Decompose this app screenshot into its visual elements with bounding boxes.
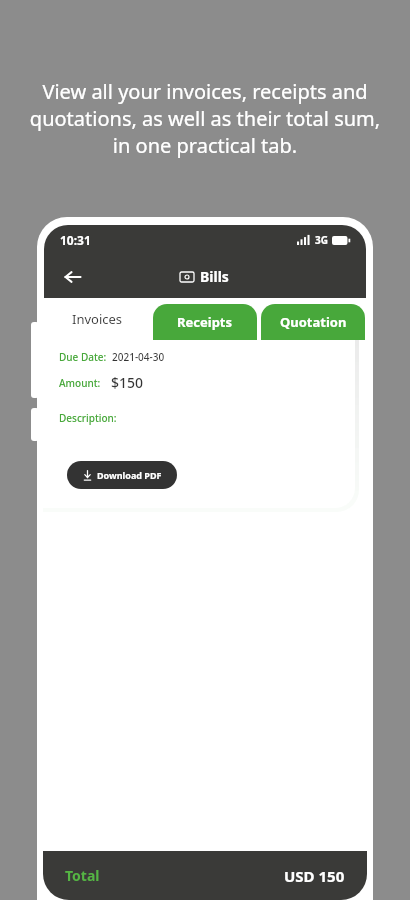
staticText: Quotation [280,313,347,331]
staticText: View all your invoices, receipts and quo… [20,78,390,159]
staticText: 10:31 [60,232,91,248]
staticText: 2021-04-30 [112,350,165,364]
staticText: Description: [59,411,117,425]
staticText: Receipts [177,313,233,331]
button[interactable]: Receipts [153,304,257,340]
staticText: Bills [200,267,229,286]
staticText: $150 [111,373,144,392]
staticText: Amount: [59,376,101,390]
staticText: Total [65,866,100,885]
button[interactable]: Quotation [261,304,365,340]
staticText: Due Date: [59,350,107,364]
staticText: USD 150 [284,866,345,886]
button[interactable]: Total [43,851,367,900]
staticText: Download PDF [97,469,162,481]
staticText: Invoices [72,310,123,328]
staticText: 3G [315,233,328,247]
button[interactable]: Download PDF [67,461,177,489]
button[interactable]: Back [58,262,88,292]
button[interactable]: Invoices [45,298,149,340]
